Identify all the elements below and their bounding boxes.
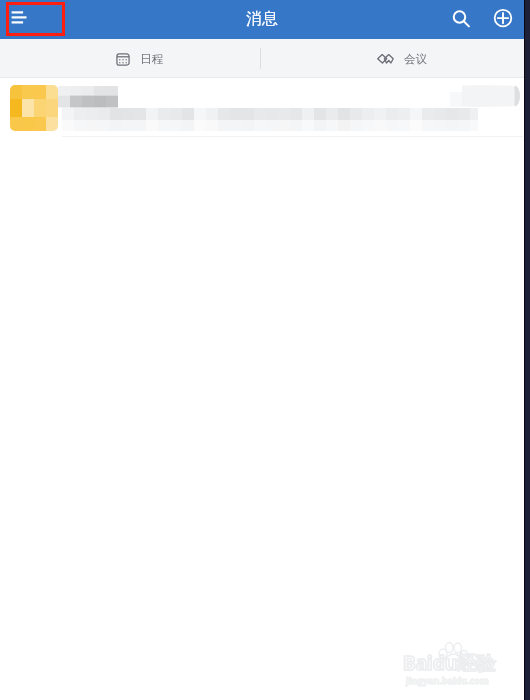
button[interactable]: 会议 (261, 39, 523, 78)
staticText: jingyan.baidu.com (406, 674, 489, 686)
button[interactable]: Search (441, 0, 478, 39)
staticText: 会议 (404, 52, 427, 66)
staticText: Baidu经验 (403, 650, 496, 676)
button[interactable]: Menu (0, 0, 56, 39)
button[interactable]: 日程 (0, 39, 260, 78)
staticText: 消息 (246, 9, 278, 29)
button[interactable] (0, 78, 530, 138)
button[interactable]: Add (485, 0, 522, 39)
staticText: 日程 (140, 52, 163, 66)
